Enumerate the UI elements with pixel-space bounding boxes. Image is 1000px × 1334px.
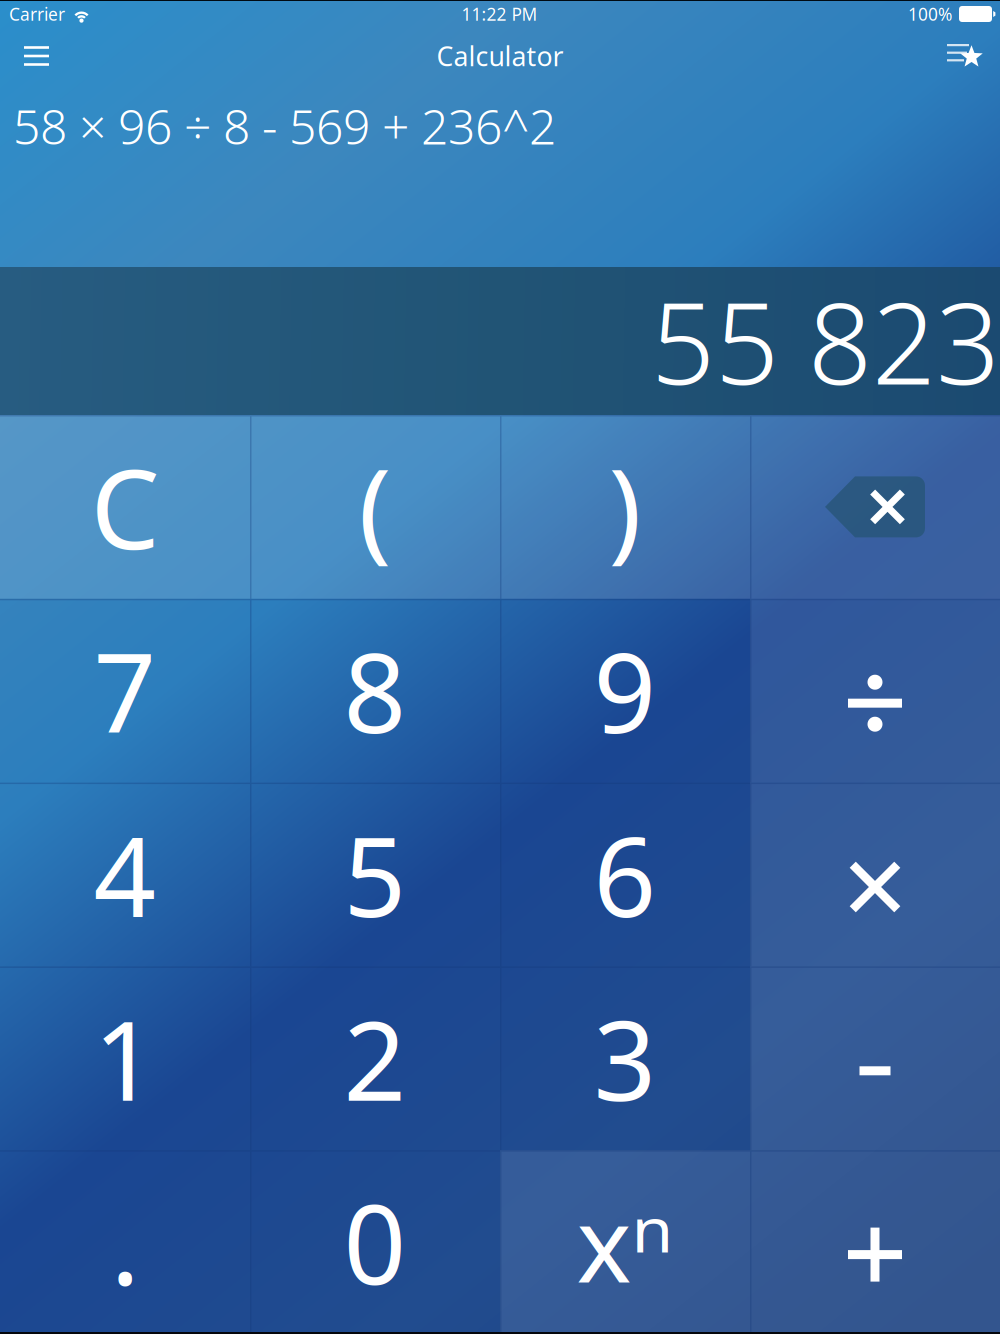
button[interactable]: xⁿ <box>500 1150 750 1334</box>
button[interactable] <box>750 966 1000 1150</box>
button[interactable]: 0 <box>250 1150 500 1334</box>
staticText: 11:22 PM <box>461 2 537 25</box>
staticText: ) <box>608 434 641 579</box>
staticText: 3 <box>593 986 656 1131</box>
button[interactable] <box>750 599 1000 783</box>
staticText: C <box>90 434 159 579</box>
button[interactable]: 3 <box>500 966 750 1150</box>
staticText: 7 <box>93 618 156 763</box>
staticText: Calculator <box>436 38 563 74</box>
staticText: ( <box>358 434 391 579</box>
button[interactable]: 4 <box>0 783 250 966</box>
staticText: Carrier <box>9 2 65 25</box>
button[interactable]: 2 <box>250 966 500 1150</box>
staticText: . <box>110 1169 139 1315</box>
staticText: 9 <box>593 618 656 763</box>
button[interactable]: 9 <box>500 599 750 783</box>
button[interactable]: . <box>0 1150 250 1334</box>
button[interactable]: ) <box>500 415 750 599</box>
staticText: xⁿ <box>576 1173 673 1311</box>
staticText: 1 <box>93 986 156 1131</box>
button[interactable] <box>750 415 1000 599</box>
button[interactable]: 1 <box>0 966 250 1150</box>
staticText: 4 <box>93 802 156 947</box>
button[interactable]: 5 <box>250 783 500 966</box>
button[interactable] <box>750 783 1000 966</box>
button[interactable]: Saved expressions <box>927 32 1000 86</box>
button[interactable]: C <box>0 415 250 599</box>
button[interactable]: 6 <box>500 783 750 966</box>
staticText: 8 <box>343 618 406 763</box>
staticText: 0 <box>343 1169 406 1315</box>
staticText: 2 <box>343 986 406 1131</box>
staticText: 58 × 96 ÷ 8 - 569 + 236^2 <box>13 94 556 158</box>
staticText: 55 823 <box>651 267 1000 415</box>
button[interactable]: 7 <box>0 599 250 783</box>
button[interactable]: ( <box>250 415 500 599</box>
staticText: 100% <box>908 2 952 25</box>
button[interactable]: Menu <box>0 33 73 85</box>
staticText: 6 <box>593 802 656 947</box>
staticText: 5 <box>343 802 406 947</box>
button[interactable] <box>750 1150 1000 1334</box>
button[interactable]: 8 <box>250 599 500 783</box>
